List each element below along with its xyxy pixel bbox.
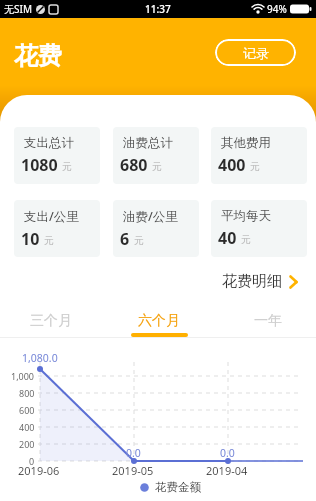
staticText: 0.0 xyxy=(220,446,235,460)
staticText: 一年 xyxy=(254,312,282,330)
button[interactable]: 支出/公里 xyxy=(14,200,100,257)
staticText: 平均每天 xyxy=(221,208,271,224)
staticText: 元 xyxy=(62,160,72,173)
staticText: 支出总计 xyxy=(24,135,74,151)
staticText: 1,080.0 xyxy=(22,351,58,365)
button[interactable]: 油费总计 xyxy=(113,127,199,184)
staticText: 花费金额 xyxy=(155,480,201,494)
staticText: 油费总计 xyxy=(123,135,173,151)
staticText: 2019-05 xyxy=(112,463,154,478)
staticText: 元 xyxy=(152,160,162,173)
staticText: 680 xyxy=(120,154,148,176)
staticText: 花费 xyxy=(14,41,62,71)
button[interactable]: 平均每天 xyxy=(211,200,307,257)
staticText: 记录 xyxy=(243,45,269,61)
staticText: 6 xyxy=(120,228,130,250)
button[interactable]: 支出总计 xyxy=(14,127,100,184)
staticText: 三个月 xyxy=(30,312,72,330)
staticText: 支出/公里 xyxy=(24,208,79,225)
staticText: 600 xyxy=(19,404,35,416)
button[interactable]: 花费明细 xyxy=(222,272,299,291)
staticText: 2019-06 xyxy=(18,463,60,478)
staticText: 元 xyxy=(250,160,260,173)
staticText: 无SIM xyxy=(4,2,32,16)
staticText: 六个月 xyxy=(138,312,180,330)
staticText: 10 xyxy=(21,228,40,250)
staticText: 40 xyxy=(218,227,237,249)
staticText: 其他费用 xyxy=(221,135,271,151)
staticText: 元 xyxy=(44,234,54,247)
staticText: 0.0 xyxy=(126,446,141,460)
staticText: 200 xyxy=(19,438,35,450)
staticText: 1,000 xyxy=(11,370,35,382)
button[interactable]: 六个月 xyxy=(124,312,194,330)
button[interactable]: 三个月 xyxy=(16,312,86,330)
staticText: 400 xyxy=(218,154,246,176)
staticText: 94% xyxy=(267,2,287,16)
staticText: 400 xyxy=(19,421,35,433)
staticText: 油费/公里 xyxy=(123,208,178,225)
staticText: 元 xyxy=(241,233,251,246)
staticText: 800 xyxy=(19,387,35,399)
staticText: 1080 xyxy=(21,154,58,176)
button[interactable]: 记录 xyxy=(215,39,296,66)
staticText: 2019-04 xyxy=(206,463,248,478)
button[interactable]: 其他费用 xyxy=(211,127,307,184)
staticText: 11:37 xyxy=(145,2,171,16)
button[interactable]: 油费/公里 xyxy=(113,200,199,257)
button[interactable]: 一年 xyxy=(233,312,303,330)
staticText: 元 xyxy=(134,234,144,247)
staticText: 0 xyxy=(29,455,35,467)
button[interactable]: 花费金额 xyxy=(140,480,201,494)
staticText: 花费明细 xyxy=(222,272,282,291)
